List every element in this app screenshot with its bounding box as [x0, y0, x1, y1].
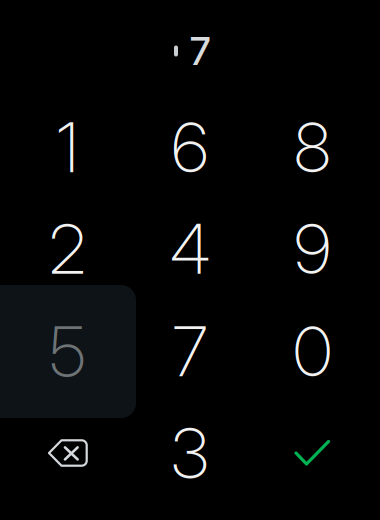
staticText: 6	[171, 106, 208, 189]
button[interactable]: 5	[6, 301, 128, 401]
staticText: 0	[293, 310, 332, 393]
staticText: 7	[190, 28, 210, 74]
button[interactable]: 9	[251, 199, 373, 299]
button[interactable]: 6	[129, 97, 251, 197]
button[interactable]: 0	[251, 301, 373, 401]
button[interactable]: Delete	[6, 403, 128, 503]
staticText: 2	[49, 208, 86, 290]
staticText: 7	[172, 310, 207, 393]
staticText: 3	[171, 412, 209, 494]
staticText: 1	[56, 106, 78, 189]
button[interactable]: 4	[129, 199, 251, 299]
button[interactable]: 2	[6, 199, 128, 299]
button[interactable]: 7	[129, 301, 251, 401]
button[interactable]: 3	[129, 403, 251, 503]
button[interactable]: Confirm	[251, 403, 373, 503]
staticText: 5	[49, 310, 85, 393]
staticText: 9	[294, 208, 331, 290]
staticText: 4	[170, 208, 210, 290]
button[interactable]: 8	[251, 97, 373, 197]
button[interactable]: 1	[6, 97, 128, 197]
staticText: 8	[294, 106, 331, 189]
